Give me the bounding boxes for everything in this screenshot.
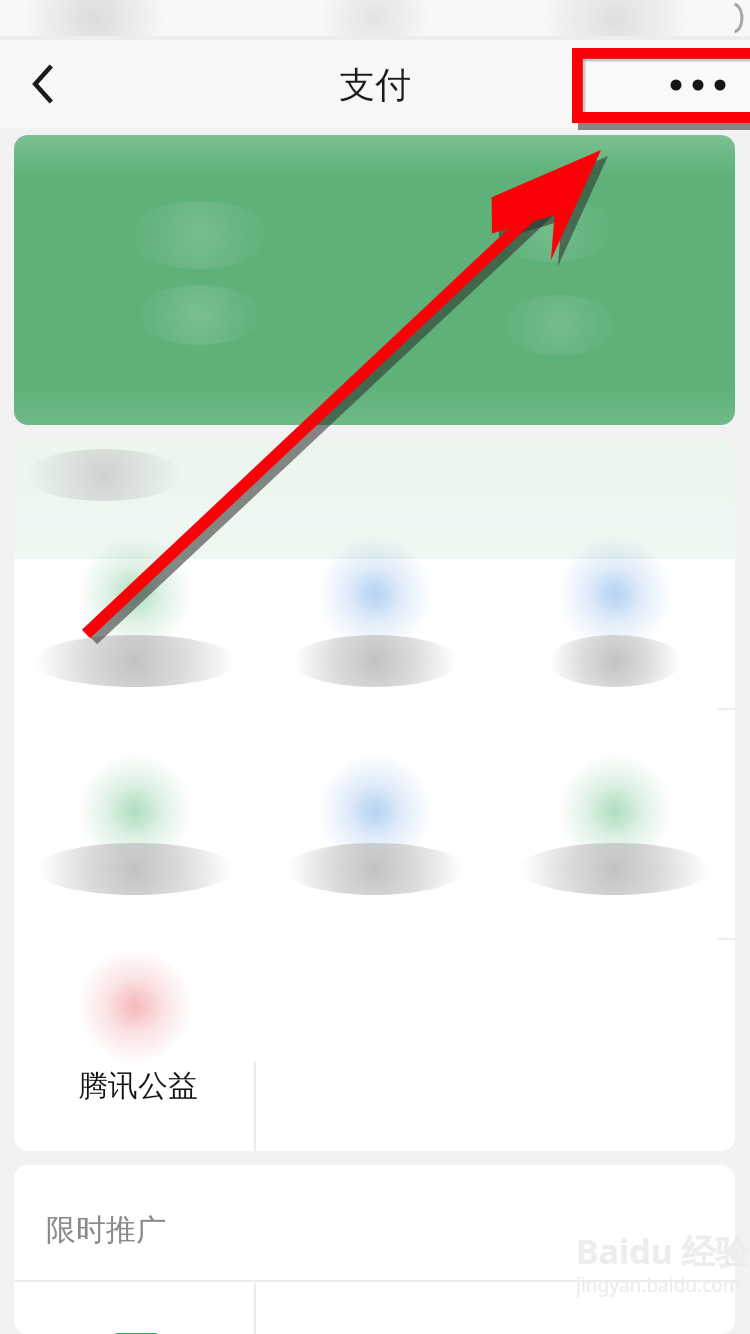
staticText: 腾讯公益 [78, 1067, 198, 1105]
staticText: Baidu 经验 [576, 1228, 750, 1274]
button[interactable]: Service shortcut [495, 716, 734, 933]
button[interactable]: 腾讯公益 [14, 939, 255, 1151]
button[interactable]: Service shortcut [255, 716, 494, 933]
staticText: jingyan.baidu.com [576, 1272, 741, 1298]
staticText: 支付 [339, 62, 411, 107]
button[interactable]: Service shortcut [255, 499, 494, 716]
button[interactable]: Service shortcut [495, 499, 734, 716]
button[interactable]: Back [0, 40, 88, 128]
staticText: 限时推广 [46, 1211, 166, 1249]
button[interactable]: More options [572, 47, 750, 122]
button[interactable]: Service shortcut [15, 716, 254, 933]
button[interactable]: Wallet balance card [14, 135, 735, 425]
button[interactable]: Service shortcut [15, 499, 254, 716]
